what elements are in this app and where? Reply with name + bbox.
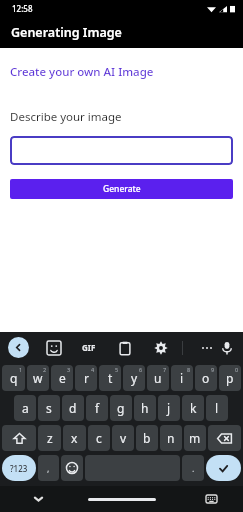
button[interactable] — [10, 136, 233, 165]
staticText: Create your own AI Image — [10, 64, 154, 80]
staticText: p — [226, 370, 234, 386]
staticText: 9 — [211, 366, 215, 373]
staticText: q — [10, 370, 18, 386]
staticText: u — [154, 370, 162, 386]
staticText: j — [167, 400, 171, 416]
button[interactable]: i — [171, 365, 193, 391]
button[interactable]: Switch keyboard — [201, 489, 221, 509]
staticText: . — [192, 462, 195, 474]
button[interactable]: c — [88, 425, 110, 451]
button[interactable]: w — [27, 365, 49, 391]
staticText: 3 — [67, 366, 71, 373]
staticText: 8 — [187, 366, 191, 373]
button[interactable]: Generate — [10, 179, 233, 199]
button[interactable]: Comma — [38, 455, 59, 481]
staticText: r — [84, 370, 89, 386]
button[interactable]: q — [2, 365, 25, 391]
staticText: Describe your image — [10, 109, 122, 125]
staticText: d — [69, 400, 77, 416]
staticText: 5 — [115, 366, 119, 373]
button[interactable]: s — [38, 395, 60, 421]
button[interactable]: d — [62, 395, 84, 421]
button[interactable]: j — [158, 395, 180, 421]
staticText: b — [143, 430, 151, 446]
button[interactable]: h — [134, 395, 156, 421]
button[interactable]: ?123 — [2, 455, 36, 481]
button[interactable]: Emoji — [61, 455, 83, 481]
staticText: w — [33, 370, 43, 386]
staticText: Generate — [103, 183, 141, 195]
button[interactable]: m — [184, 425, 206, 451]
button[interactable]: p — [219, 365, 241, 391]
staticText: 6 — [139, 366, 143, 373]
staticText: Generating Image — [11, 24, 122, 41]
button[interactable]: Voice input — [219, 340, 235, 356]
staticText: m — [189, 430, 201, 446]
button[interactable]: Hide keyboard — [28, 489, 48, 509]
button[interactable]: Shift — [2, 425, 36, 451]
staticText: l — [215, 400, 219, 416]
button[interactable]: r — [75, 365, 97, 391]
button[interactable]: Back — [8, 337, 29, 358]
staticText: v — [120, 430, 127, 446]
button[interactable]: x — [63, 425, 86, 451]
staticText: , — [47, 462, 50, 474]
button[interactable]: b — [136, 425, 158, 451]
staticText: t — [108, 370, 113, 386]
staticText: 2 — [43, 366, 47, 373]
button[interactable]: n — [160, 425, 182, 451]
staticText: z — [47, 430, 53, 446]
button[interactable]: k — [182, 395, 204, 421]
staticText: 7 — [163, 366, 167, 373]
staticText: x — [71, 430, 78, 446]
staticText: n — [167, 430, 175, 446]
button[interactable]: o — [195, 365, 217, 391]
staticText: a — [22, 400, 29, 416]
staticText: y — [131, 370, 138, 386]
button[interactable]: Stickers — [47, 341, 61, 355]
button[interactable]: f — [86, 395, 108, 421]
staticText: c — [96, 430, 102, 446]
button[interactable]: y — [123, 365, 145, 391]
button[interactable]: e — [51, 365, 73, 391]
staticText: g — [117, 400, 125, 416]
button[interactable]: Enter — [206, 455, 241, 481]
staticText: 4 — [91, 366, 95, 373]
staticText: 12:58 — [12, 3, 33, 14]
button[interactable]: z — [38, 425, 61, 451]
staticText: 1 — [19, 366, 23, 373]
staticText: ?123 — [10, 463, 28, 474]
button[interactable]: v — [112, 425, 134, 451]
button[interactable]: Clipboard — [118, 341, 132, 355]
button[interactable]: Period — [182, 455, 204, 481]
button[interactable]: u — [147, 365, 169, 391]
staticText: k — [190, 400, 197, 416]
staticText: i — [180, 370, 184, 386]
button[interactable]: l — [206, 395, 228, 421]
staticText: o — [202, 370, 210, 386]
button[interactable]: GIF — [82, 342, 96, 353]
button[interactable]: a — [14, 395, 36, 421]
staticText: h — [141, 400, 149, 416]
button[interactable]: Settings — [154, 341, 168, 355]
button[interactable]: More — [199, 340, 215, 356]
button[interactable]: Backspace — [208, 425, 241, 451]
staticText: s — [46, 400, 52, 416]
staticText: e — [59, 370, 66, 386]
button[interactable]: g — [110, 395, 132, 421]
staticText: 0 — [235, 366, 239, 373]
staticText: GIF — [82, 342, 96, 353]
staticText: f — [95, 400, 100, 416]
button[interactable]: t — [99, 365, 121, 391]
